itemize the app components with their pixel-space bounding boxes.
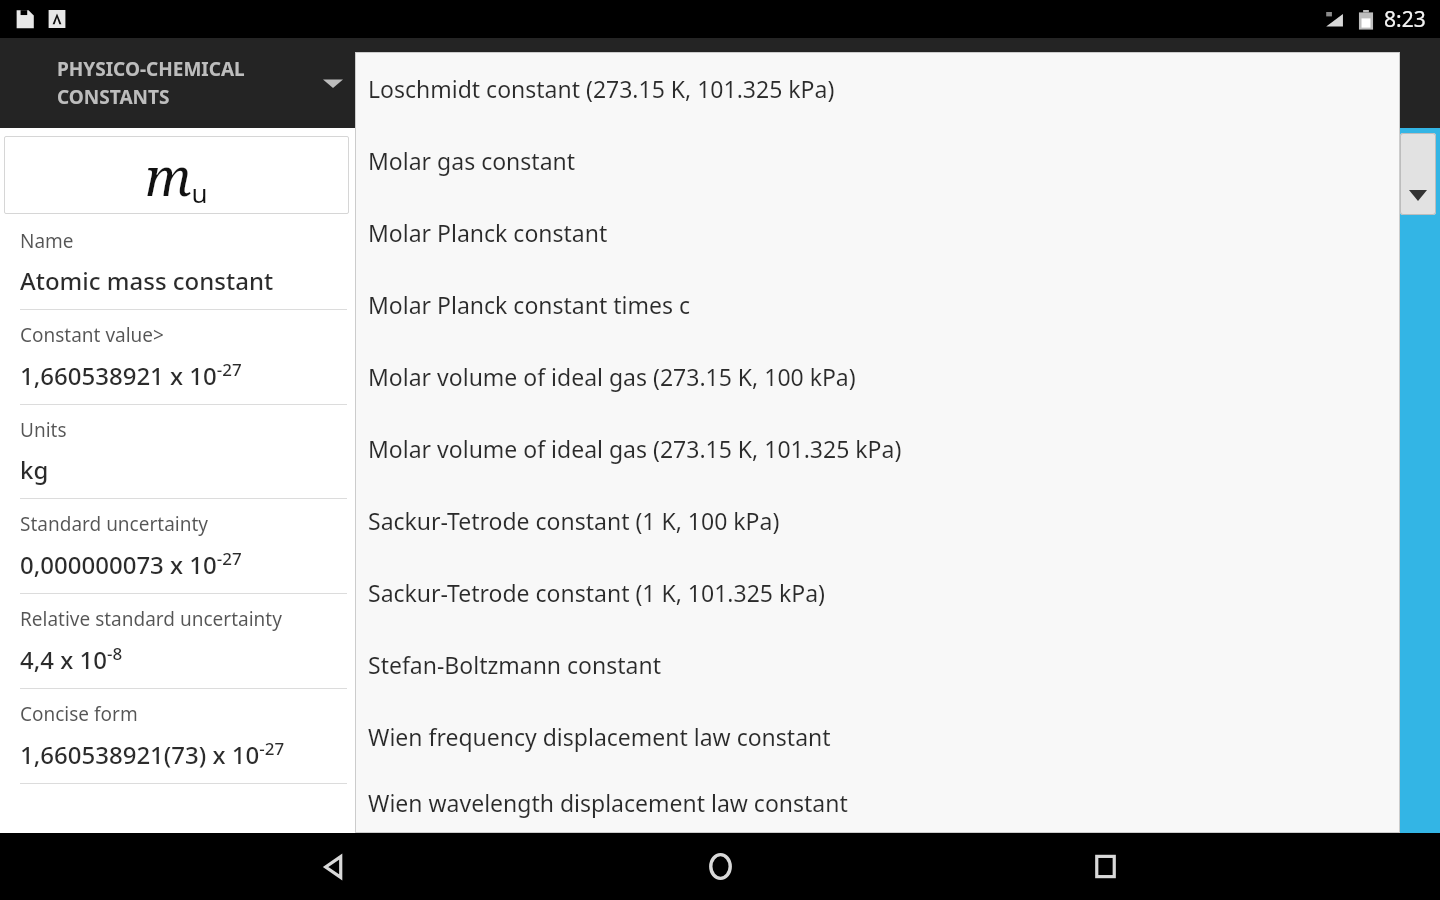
staticText: Units — [20, 417, 67, 443]
staticText: 1,660538921(73) x 10-27 — [20, 737, 285, 771]
staticText: PHYSICO-CHEMICAL CONSTANTS — [57, 56, 245, 110]
button[interactable]: Scroll down — [1400, 133, 1436, 215]
button[interactable]: Back — [285, 833, 385, 900]
staticText: mu — [145, 140, 208, 211]
button[interactable]: Loschmidt constant (273.15 K, 101.325 kP… — [355, 52, 1400, 124]
staticText: Wien frequency displacement law constant — [368, 721, 831, 752]
button[interactable]: Recent apps — [1055, 833, 1155, 900]
button[interactable]: Molar Planck constant times c — [355, 268, 1400, 340]
staticText: 0,000000073 x 10-27 — [20, 547, 242, 581]
staticText: Concise form — [20, 701, 138, 727]
other: Open category dropdown — [323, 76, 343, 90]
button[interactable]: Sackur-Tetrode constant (1 K, 100 kPa) — [355, 484, 1400, 556]
staticText: Relative standard uncertainty — [20, 606, 282, 632]
button[interactable]: Units — [0, 417, 355, 511]
button[interactable]: Wien wavelength displacement law constan… — [355, 772, 1400, 833]
button[interactable]: Sackur-Tetrode constant (1 K, 101.325 kP… — [355, 556, 1400, 628]
staticText: 4,4 x 10-8 — [20, 642, 123, 676]
button[interactable]: mu — [4, 136, 349, 214]
button[interactable]: Home — [670, 833, 770, 900]
staticText: Loschmidt constant (273.15 K, 101.325 kP… — [368, 73, 835, 104]
staticText: Standard uncertainty — [20, 511, 209, 537]
button[interactable]: Wien frequency displacement law constant — [355, 700, 1400, 772]
button[interactable]: Constant value> — [0, 322, 355, 417]
button[interactable]: Name — [0, 228, 355, 322]
button[interactable]: Molar gas constant — [355, 124, 1400, 196]
staticText: Name — [20, 228, 74, 254]
staticText: Molar volume of ideal gas (273.15 K, 101… — [368, 433, 902, 464]
staticText: Sackur-Tetrode constant (1 K, 100 kPa) — [368, 505, 780, 536]
button[interactable]: Concise form — [0, 701, 355, 796]
button[interactable]: Stefan-Boltzmann constant — [355, 628, 1400, 700]
button[interactable]: Standard uncertainty — [0, 511, 355, 606]
staticText: 1,660538921 x 10-27 — [20, 358, 242, 392]
staticText: Wien wavelength displacement law constan… — [368, 787, 848, 818]
staticText: 8:23 — [1384, 5, 1426, 34]
staticText: Molar volume of ideal gas (273.15 K, 100… — [368, 361, 856, 392]
staticText: Molar Planck constant — [368, 217, 608, 248]
staticText: Sackur-Tetrode constant (1 K, 101.325 kP… — [368, 577, 825, 608]
staticText: kg — [20, 453, 49, 486]
staticText: Molar Planck constant times c — [368, 289, 691, 320]
button[interactable]: Molar volume of ideal gas (273.15 K, 101… — [355, 412, 1400, 484]
button[interactable]: Relative standard uncertainty — [0, 606, 355, 701]
button[interactable]: Molar volume of ideal gas (273.15 K, 100… — [355, 340, 1400, 412]
button[interactable]: PHYSICO-CHEMICAL CONSTANTS — [0, 38, 355, 128]
staticText: Constant value> — [20, 322, 164, 348]
button[interactable]: Molar Planck constant — [355, 196, 1400, 268]
staticText: Molar gas constant — [368, 145, 576, 176]
staticText: Atomic mass constant — [20, 264, 274, 297]
staticText: Stefan-Boltzmann constant — [368, 649, 661, 680]
